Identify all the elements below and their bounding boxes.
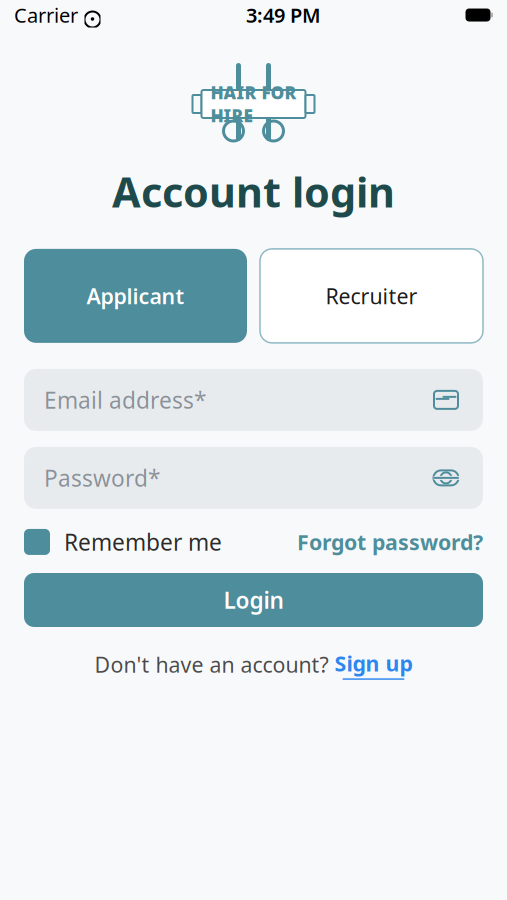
- staticText: Remember me: [64, 527, 222, 557]
- staticText: Sign up: [334, 649, 412, 677]
- staticText: Don't have an account?: [94, 650, 328, 678]
- staticText: Login: [223, 585, 283, 615]
- button[interactable]: Login: [24, 573, 483, 627]
- button[interactable]: Email: [429, 383, 463, 417]
- staticText: Forgot password?: [297, 528, 483, 556]
- staticText: Password*: [44, 463, 160, 493]
- staticText: Applicant: [86, 282, 184, 310]
- staticText: Email address*: [44, 385, 206, 415]
- staticText: Recruiter: [325, 282, 417, 310]
- button[interactable]: Recruiter: [260, 249, 483, 343]
- button[interactable]: Applicant: [24, 249, 247, 343]
- button[interactable]: Remember me: [24, 527, 222, 557]
- button[interactable]: Show password: [429, 461, 463, 495]
- staticText: Account login: [112, 164, 395, 219]
- button[interactable]: Forgot password?: [297, 528, 483, 556]
- staticText: Carrier: [14, 2, 78, 28]
- button[interactable]: Sign up: [334, 649, 412, 680]
- staticText: HAIR FOR HIRE: [210, 81, 296, 127]
- staticText: 3:49 PM: [246, 2, 321, 28]
